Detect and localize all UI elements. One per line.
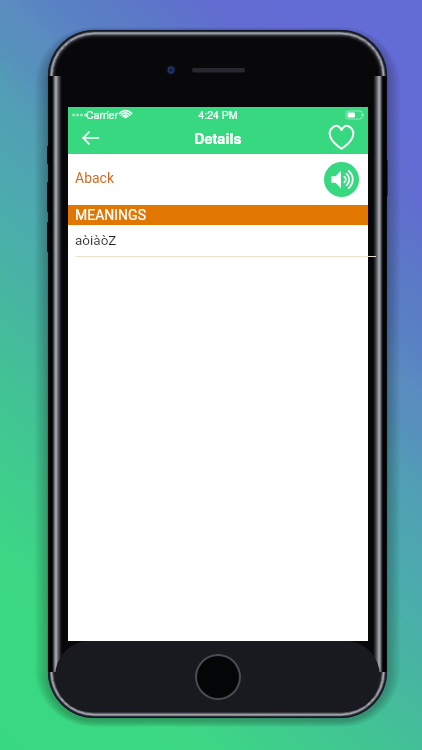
button[interactable]: Back <box>75 124 106 152</box>
staticText: Aback <box>75 170 115 186</box>
button[interactable]: Favorite <box>325 123 357 152</box>
button[interactable]: Aback <box>68 154 368 205</box>
staticText: Carrier <box>86 107 119 122</box>
staticText: 4:24 PM <box>68 107 368 122</box>
staticText: MEANINGS <box>75 207 146 223</box>
staticText: Details <box>194 128 242 149</box>
button[interactable]: Play pronunciation <box>324 162 359 197</box>
button[interactable]: aòiàòZ <box>68 225 368 257</box>
staticText: aòiàòZ <box>75 232 117 248</box>
